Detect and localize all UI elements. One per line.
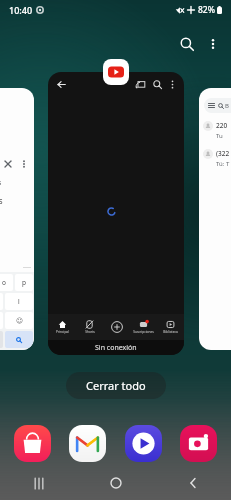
button[interactable]: Back — [48, 72, 184, 355]
staticText: Tú: T — [216, 160, 230, 168]
staticText: p — [22, 278, 26, 287]
button[interactable]: B — [204, 98, 231, 113]
button[interactable]: Recents — [0, 466, 77, 500]
staticText: o — [2, 278, 6, 287]
button[interactable]: (322 — [203, 149, 231, 168]
button[interactable]: Back — [154, 466, 231, 500]
button[interactable]: Search — [150, 77, 164, 91]
button[interactable]: p — [15, 274, 33, 291]
button[interactable]: o — [0, 274, 13, 291]
button[interactable]: Camera — [180, 425, 217, 462]
staticText: Cerrar todo — [86, 378, 146, 393]
button[interactable]: 220 — [203, 121, 231, 140]
button[interactable]: Search — [173, 30, 201, 58]
staticText: 220 — [216, 121, 228, 130]
button[interactable]: l — [5, 293, 33, 310]
staticText: Sin conexión — [95, 343, 137, 353]
staticText: Tu — [216, 132, 223, 140]
button[interactable]: Gmail — [69, 425, 106, 462]
staticText: ntrados — [0, 178, 2, 188]
button[interactable]: Search key — [5, 331, 33, 348]
button[interactable]: More options — [201, 32, 225, 56]
button[interactable]: ☺ — [5, 312, 33, 329]
staticText: Principal — [56, 330, 69, 334]
button[interactable]: Cerrar todo — [66, 372, 166, 399]
button[interactable]: Shorts — [76, 314, 103, 340]
staticText: 82% — [198, 4, 215, 16]
button[interactable]: Biblioteca — [157, 314, 184, 340]
button[interactable]: Cast — [133, 77, 147, 91]
staticText: Suscripciones — [133, 330, 154, 334]
button[interactable]: Home — [77, 466, 154, 500]
staticText: Biblioteca — [163, 330, 178, 334]
staticText: ☺ — [16, 317, 23, 325]
button[interactable] — [103, 314, 130, 340]
button[interactable]: ntrados — [0, 88, 34, 350]
button[interactable]: More options — [166, 78, 178, 90]
button[interactable]: Back — [54, 77, 68, 91]
button[interactable]: Galaxy Store — [14, 425, 51, 462]
button[interactable]: Internet — [125, 425, 162, 462]
staticText: Shorts — [85, 330, 95, 334]
staticText: (322 — [216, 149, 230, 158]
staticText: Francis — [0, 195, 3, 206]
staticText: B — [225, 102, 229, 110]
button[interactable]: Suscripciones — [130, 314, 157, 340]
staticText: l — [18, 297, 20, 306]
button[interactable]: Principal — [48, 314, 76, 340]
button[interactable]: B — [199, 88, 231, 350]
staticText: 10:40 — [9, 4, 33, 16]
button[interactable]: YouTube — [103, 59, 129, 85]
